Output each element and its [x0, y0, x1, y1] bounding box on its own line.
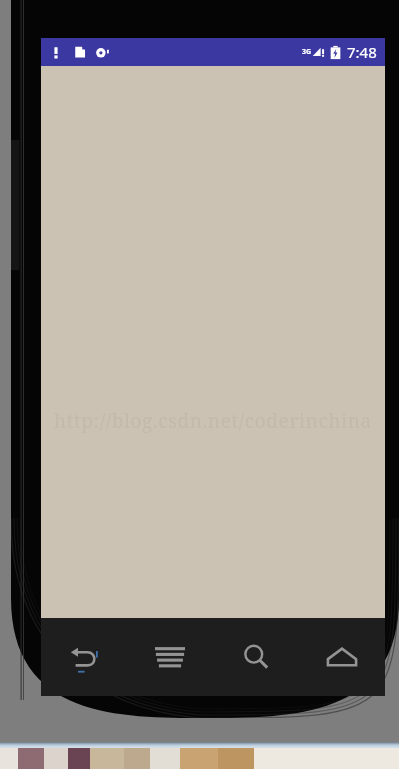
- staticText: 3G: [302, 47, 312, 57]
- button[interactable]: Back: [41, 618, 127, 696]
- button[interactable]: Menu: [127, 618, 213, 696]
- staticText: 7:48: [347, 42, 377, 62]
- button[interactable]: Search: [213, 618, 299, 696]
- button[interactable]: Home: [299, 618, 385, 696]
